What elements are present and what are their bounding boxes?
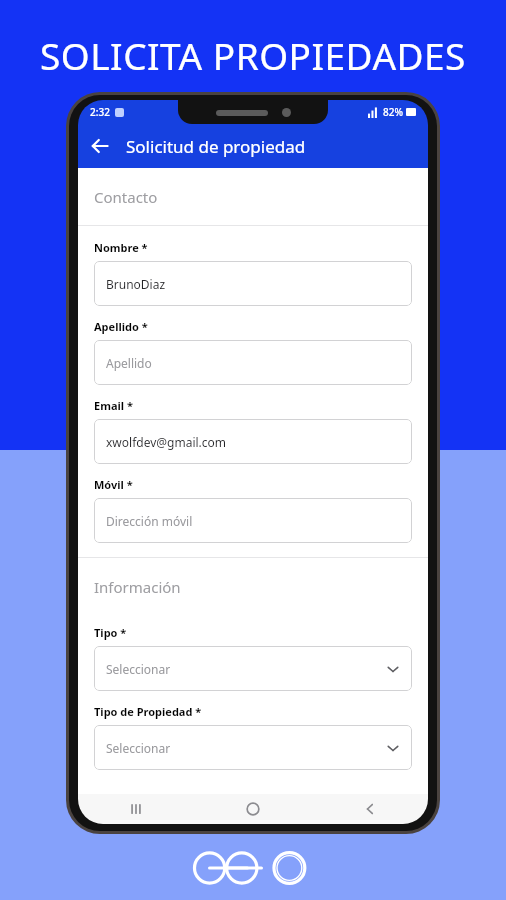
- staticText: xwolfdev@gmail.com: [106, 434, 227, 450]
- staticText: Apellido *: [94, 319, 148, 334]
- staticText: Tipo de Propiedad *: [94, 704, 202, 719]
- button[interactable]: Home: [233, 794, 273, 824]
- button[interactable]: Seleccionar: [94, 646, 412, 691]
- staticText: SOLICITA PROPIEDADES: [40, 30, 466, 80]
- staticText: Información: [94, 577, 181, 597]
- button[interactable]: Recents: [116, 794, 156, 824]
- staticText: Solicitud de propiedad: [126, 135, 306, 158]
- staticText: BrunoDiaz: [106, 276, 166, 292]
- button[interactable]: xwolfdev@gmail.com: [94, 419, 412, 464]
- staticText: Dirección móvil: [106, 513, 193, 529]
- button[interactable]: Dirección móvil: [94, 498, 412, 543]
- staticText: Nombre *: [94, 240, 148, 255]
- button[interactable]: Back: [350, 794, 390, 824]
- staticText: Apellido: [106, 355, 152, 371]
- staticText: Email *: [94, 398, 133, 413]
- staticText: 2:32: [90, 105, 110, 119]
- button[interactable]: BrunoDiaz: [94, 261, 412, 306]
- button[interactable]: Seleccionar: [94, 725, 412, 770]
- staticText: Contacto: [94, 187, 158, 207]
- button[interactable]: Back: [78, 124, 122, 168]
- staticText: Móvil *: [94, 477, 133, 492]
- staticText: Seleccionar: [106, 740, 171, 756]
- staticText: Seleccionar: [106, 661, 171, 677]
- staticText: Tipo *: [94, 625, 127, 640]
- button[interactable]: Apellido: [94, 340, 412, 385]
- staticText: 82%: [383, 105, 403, 119]
